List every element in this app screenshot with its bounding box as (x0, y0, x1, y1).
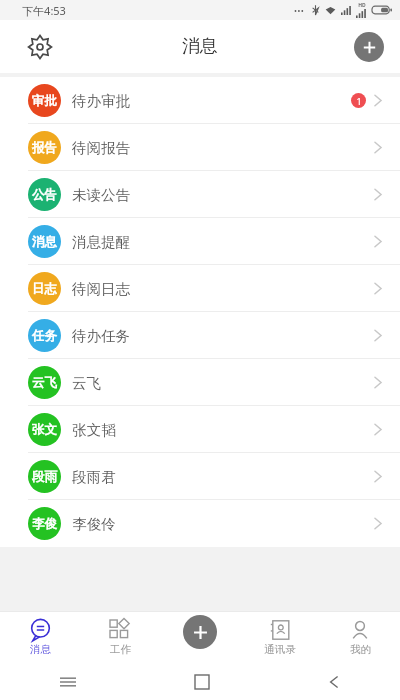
staticText: 李俊 (32, 516, 57, 532)
button[interactable]: 我的 (320, 611, 400, 664)
staticText: 张文 (32, 422, 57, 438)
staticText: 段雨君 (72, 468, 116, 486)
button[interactable]: 工作 (80, 611, 160, 664)
button[interactable]: 消息 (0, 611, 80, 664)
staticText: 1 (356, 95, 362, 107)
button[interactable]: 审批 (0, 77, 400, 124)
button[interactable]: 李俊 (0, 500, 400, 547)
staticText: 待办审批 (72, 92, 130, 110)
staticText: 未读公告 (72, 186, 130, 204)
staticText: 消息 (182, 35, 218, 58)
staticText: 审批 (32, 93, 57, 109)
staticText: 日志 (32, 281, 57, 297)
staticText: 待办任务 (72, 327, 130, 345)
staticText: 待阅报告 (72, 139, 130, 157)
staticText: 消息 (30, 643, 51, 656)
button[interactable]: 任务 (0, 312, 400, 359)
staticText: 消息 (32, 234, 57, 250)
staticText: 公告 (32, 187, 57, 203)
staticText: 云飞 (32, 375, 57, 391)
staticText: 报告 (32, 140, 57, 156)
staticText: 段雨 (32, 469, 57, 485)
button[interactable]: 张文 (0, 406, 400, 453)
button[interactable]: New (183, 615, 217, 649)
staticText: 下午4:53 (22, 3, 66, 18)
staticText: 我的 (350, 643, 371, 656)
staticText: HD (358, 2, 366, 9)
staticText: 待阅日志 (72, 280, 130, 298)
button[interactable]: 通讯录 (240, 611, 320, 664)
button[interactable]: 日志 (0, 265, 400, 312)
staticText: 云飞 (72, 374, 101, 392)
button[interactable]: 报告 (0, 124, 400, 171)
button[interactable]: 云飞 (0, 359, 400, 406)
staticText: 消息提醒 (72, 233, 130, 251)
button[interactable]: Add (354, 32, 384, 62)
staticText: 通讯录 (264, 643, 296, 656)
button[interactable]: 段雨 (0, 453, 400, 500)
staticText: 工作 (110, 643, 131, 656)
button[interactable]: 公告 (0, 171, 400, 218)
staticText: 任务 (32, 328, 57, 344)
staticText: 李俊伶 (72, 515, 116, 533)
staticText: 张文韬 (72, 421, 116, 439)
button[interactable]: Settings (18, 25, 62, 69)
button[interactable]: 消息 (0, 218, 400, 265)
